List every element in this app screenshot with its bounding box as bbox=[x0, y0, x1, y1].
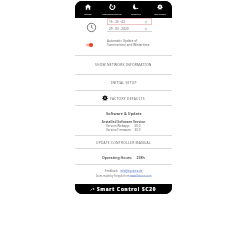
button[interactable]: SHOW NETWORK INFORMATION bbox=[75, 55, 172, 73]
staticText: FACTORY DEFAULTS bbox=[110, 96, 145, 100]
button[interactable]: INITIAL SETUP bbox=[75, 74, 172, 90]
button[interactable]: info@aquinea.de bbox=[120, 169, 143, 173]
staticText: Smart Control SC20 bbox=[97, 186, 157, 192]
staticText: SHOW NETWORK INFORMATION bbox=[95, 62, 152, 66]
staticText: Feedback: bbox=[105, 169, 120, 173]
staticText: Automatic Update of Summertime and Winte… bbox=[107, 39, 150, 47]
staticText: SETTINGS bbox=[154, 12, 166, 15]
button[interactable]: PROGRAMMING bbox=[100, 1, 124, 18]
button[interactable]: www.flaticon.com bbox=[130, 174, 152, 177]
staticText: Version Webapp: 60.0 bbox=[106, 124, 141, 128]
staticText: Installed Software Version bbox=[102, 119, 146, 123]
button[interactable]: Automatic update toggle bbox=[86, 43, 93, 47]
button[interactable]: 16 : 25 : 42 bbox=[107, 18, 152, 25]
staticText: Icons made by Freepik from bbox=[96, 174, 130, 177]
button[interactable]: 29 . 03 . 2020 bbox=[107, 25, 152, 32]
button[interactable]: HOME bbox=[75, 1, 100, 18]
staticText: INITIAL SETUP bbox=[111, 80, 137, 84]
staticText: Version Firmware: 30.0 bbox=[106, 128, 141, 132]
staticText: Operating Hours: 238h bbox=[102, 155, 145, 160]
staticText: www.flaticon.com bbox=[130, 174, 152, 177]
staticText: PROGRAMMING bbox=[102, 12, 122, 15]
staticText: 16 : 25 : 42 bbox=[109, 20, 125, 24]
staticText: info@aquinea.de bbox=[120, 169, 143, 173]
button[interactable]: SETTINGS bbox=[148, 1, 172, 18]
button[interactable]: EFFECTS bbox=[124, 1, 148, 18]
staticText: Software & Update bbox=[106, 111, 142, 116]
button[interactable]: UPDATE CONTROLLER MANUAL bbox=[75, 135, 172, 148]
staticText: HOME bbox=[84, 12, 92, 15]
button[interactable]: FACTORY DEFAULTS bbox=[75, 90, 172, 106]
staticText: 29 . 03 . 2020 bbox=[109, 27, 129, 31]
staticText: UPDATE CONTROLLER MANUAL bbox=[96, 140, 151, 144]
staticText: EFFECTS bbox=[131, 12, 141, 15]
